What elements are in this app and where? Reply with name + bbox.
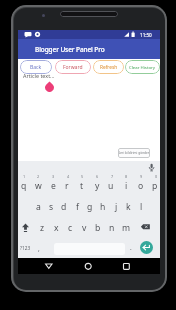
staticText: Back bbox=[30, 64, 42, 71]
staticText: , bbox=[38, 244, 40, 253]
button[interactable]: e bbox=[46, 178, 60, 193]
staticText: s bbox=[49, 201, 54, 213]
button[interactable]: t bbox=[75, 178, 89, 193]
staticText: 9 bbox=[140, 174, 143, 179]
staticText: Article text... bbox=[23, 72, 55, 79]
button[interactable]: m bbox=[119, 220, 133, 235]
staticText: p bbox=[152, 180, 158, 192]
staticText: 7 bbox=[111, 174, 114, 179]
staticText: Clear History bbox=[129, 64, 156, 70]
staticText: g bbox=[87, 201, 93, 213]
staticText: z bbox=[40, 222, 45, 234]
button[interactable]: p bbox=[148, 178, 162, 193]
button[interactable]: v bbox=[77, 220, 91, 235]
staticText: 5 bbox=[81, 174, 84, 179]
button[interactable] bbox=[119, 259, 133, 273]
button[interactable]: a bbox=[31, 199, 45, 214]
button[interactable]: q bbox=[17, 178, 31, 193]
button[interactable] bbox=[139, 220, 152, 234]
staticText: w bbox=[35, 180, 42, 192]
button[interactable] bbox=[140, 241, 153, 254]
button[interactable]: Back bbox=[20, 60, 52, 74]
button[interactable]: y bbox=[90, 178, 104, 193]
button[interactable]: f bbox=[70, 199, 84, 214]
staticText: k bbox=[126, 201, 131, 213]
staticText: b bbox=[95, 222, 101, 234]
staticText: a bbox=[36, 201, 41, 213]
staticText: Geri bildirimi gönder bbox=[118, 151, 150, 155]
button[interactable]: l bbox=[134, 199, 148, 214]
staticText: n bbox=[109, 222, 115, 234]
staticText: h bbox=[100, 201, 106, 213]
staticText: y bbox=[95, 180, 100, 192]
button[interactable]: n bbox=[105, 220, 119, 235]
staticText: 4 bbox=[67, 174, 70, 179]
staticText: Refresh bbox=[100, 64, 118, 71]
button[interactable]: c bbox=[63, 220, 77, 235]
button[interactable]: Refresh bbox=[93, 60, 124, 74]
staticText: m bbox=[122, 222, 131, 234]
staticText: l bbox=[140, 201, 143, 213]
staticText: o bbox=[138, 180, 144, 192]
button[interactable]: o bbox=[134, 178, 148, 193]
button[interactable]: b bbox=[91, 220, 105, 235]
staticText: . bbox=[130, 243, 132, 252]
staticText: 6 bbox=[96, 174, 99, 179]
button[interactable]: h bbox=[96, 199, 110, 214]
button[interactable]: i bbox=[119, 178, 133, 193]
button[interactable]: s bbox=[44, 199, 58, 214]
staticText: 1 bbox=[23, 174, 26, 179]
button[interactable]: d bbox=[57, 199, 71, 214]
button[interactable]: . bbox=[126, 240, 135, 254]
button[interactable]: ?123 bbox=[18, 241, 33, 255]
staticText: u bbox=[108, 180, 114, 192]
button[interactable]: u bbox=[104, 178, 118, 193]
button[interactable]: w bbox=[31, 178, 45, 193]
staticText: v bbox=[82, 222, 87, 234]
button[interactable]: , bbox=[34, 241, 43, 255]
button[interactable] bbox=[81, 259, 95, 273]
button[interactable]: x bbox=[49, 220, 63, 235]
staticText: Forward bbox=[63, 64, 83, 71]
staticText: 8 bbox=[125, 174, 128, 179]
staticText: x bbox=[54, 222, 59, 234]
staticText: 11:50 bbox=[140, 32, 152, 38]
staticText: ?123 bbox=[20, 245, 31, 251]
button[interactable] bbox=[19, 220, 32, 234]
button[interactable]: z bbox=[35, 220, 49, 235]
button[interactable]: Clear History bbox=[125, 60, 160, 74]
staticText: i bbox=[125, 180, 128, 192]
button[interactable]: Forward bbox=[55, 60, 91, 74]
staticText: f bbox=[76, 201, 79, 213]
staticText: r bbox=[65, 180, 69, 192]
staticText: e bbox=[51, 180, 56, 192]
staticText: d bbox=[61, 201, 67, 213]
staticText: Blogger User Panel Pro bbox=[35, 45, 105, 54]
button[interactable]: g bbox=[83, 199, 97, 214]
staticText: 2 bbox=[37, 174, 40, 179]
button[interactable]: r bbox=[60, 178, 74, 193]
staticText: 0 bbox=[155, 174, 158, 179]
button[interactable] bbox=[42, 259, 56, 273]
button[interactable]: j bbox=[109, 199, 123, 214]
staticText: 3 bbox=[52, 174, 55, 179]
button[interactable]: k bbox=[121, 199, 135, 214]
button[interactable]: Geri bildirimi gönder bbox=[118, 148, 150, 158]
staticText: j bbox=[115, 201, 118, 213]
staticText: t bbox=[80, 180, 84, 192]
staticText: c bbox=[68, 222, 73, 234]
staticText: q bbox=[21, 180, 27, 192]
